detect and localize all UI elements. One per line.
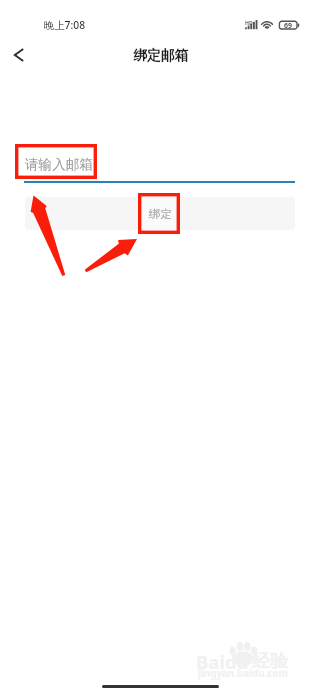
staticText: 绑定邮箱 [133,47,189,65]
staticText: 69 [284,21,293,29]
staticText: 经验 [252,650,288,673]
staticText: Baidu [196,649,249,674]
staticText: HD [245,19,253,26]
button[interactable]: 绑定 [139,197,181,230]
staticText: 绑定 [149,207,172,221]
button[interactable]: Back [1,37,37,73]
staticText: jingyan.baidu.com [198,667,289,680]
staticText: 晚上7:08 [44,18,86,32]
button[interactable]: 请输入邮箱 [0,148,317,183]
staticText: 请输入邮箱 [25,156,93,173]
